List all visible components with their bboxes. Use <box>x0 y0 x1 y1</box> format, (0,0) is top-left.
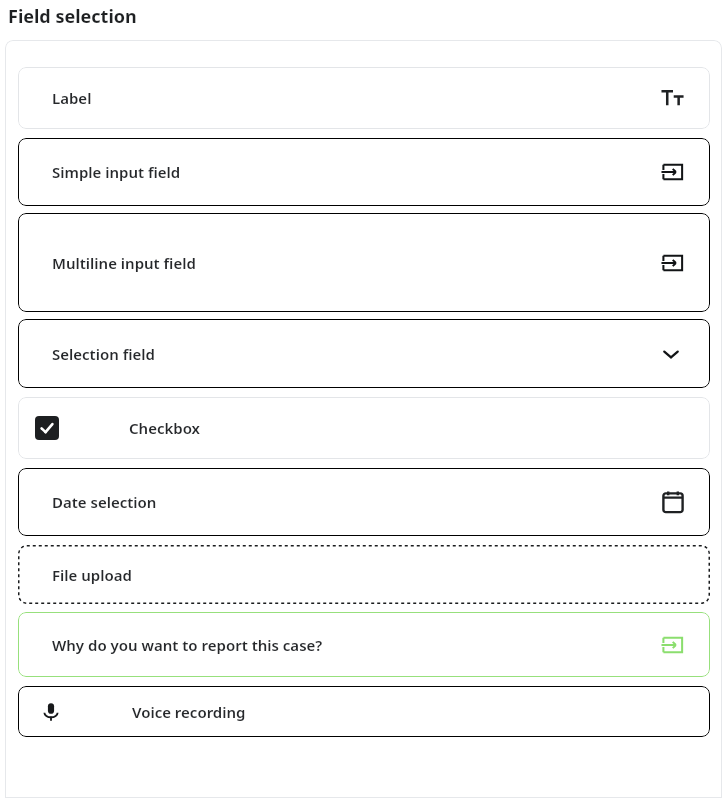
staticText: File upload <box>52 565 132 585</box>
button[interactable]: Date selection <box>18 468 710 536</box>
staticText: Checkbox <box>129 418 201 438</box>
button[interactable]: Answer input <box>658 630 688 660</box>
button[interactable]: File upload <box>18 545 710 604</box>
staticText: Simple input field <box>52 162 181 182</box>
button[interactable]: Multiline input <box>658 248 688 278</box>
button[interactable]: Start voice recording <box>18 686 710 737</box>
button[interactable]: Checkbox checked <box>18 397 710 459</box>
staticText: Field selection <box>8 4 137 29</box>
button[interactable]: Why do you want to report this case? <box>18 612 710 677</box>
button[interactable]: Start voice recording <box>38 699 64 725</box>
button[interactable]: Label <box>18 67 710 129</box>
button[interactable]: Checkbox checked <box>35 416 59 440</box>
button[interactable]: Selection field <box>18 319 710 388</box>
staticText: Multiline input field <box>52 253 196 273</box>
button[interactable]: Text formatting <box>658 83 688 113</box>
button[interactable]: Expand selection <box>656 339 686 369</box>
staticText: Date selection <box>52 492 157 512</box>
button[interactable]: Multiline input field <box>18 213 710 312</box>
button[interactable]: Simple input field <box>18 138 710 206</box>
button[interactable]: Pick a date <box>658 487 688 517</box>
staticText: Why do you want to report this case? <box>52 635 323 655</box>
button[interactable]: Simple input <box>658 157 688 187</box>
staticText: Selection field <box>52 344 155 364</box>
staticText: Label <box>52 88 92 108</box>
staticText: Voice recording <box>132 702 246 722</box>
